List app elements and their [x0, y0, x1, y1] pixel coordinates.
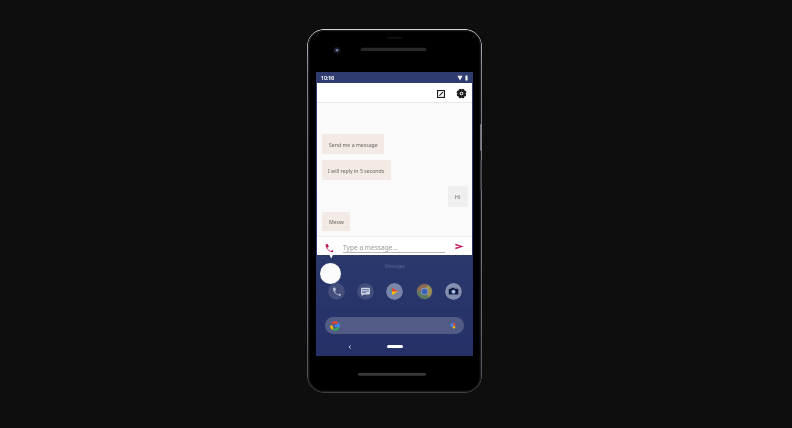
- button[interactable]: I will reply in 5 seconds: [322, 160, 391, 180]
- button[interactable]: Meow: [322, 212, 350, 231]
- button[interactable]: Send: [454, 241, 465, 252]
- button[interactable]: Send me a message: [322, 134, 384, 154]
- staticText: Meow: [329, 218, 344, 225]
- button[interactable]: Messages: [357, 283, 374, 300]
- button[interactable]: Camera: [445, 283, 462, 300]
- staticText: Messages: [375, 263, 415, 269]
- button[interactable]: Open in new window: [434, 87, 447, 100]
- staticText: Hi: [455, 193, 461, 200]
- staticText: Type a message...: [343, 243, 398, 252]
- staticText: I will reply in 5 seconds: [328, 167, 385, 174]
- button[interactable]: Search: [325, 317, 464, 334]
- button[interactable]: Play Store: [386, 283, 403, 300]
- button[interactable]: Chrome: [416, 283, 433, 300]
- button[interactable]: Back: [346, 343, 354, 351]
- button[interactable]: Phone: [328, 283, 345, 300]
- button[interactable]: Call: [323, 242, 334, 253]
- button[interactable]: Settings: [455, 87, 468, 100]
- button[interactable]: Home: [387, 345, 403, 348]
- staticText: 10:10: [321, 74, 335, 81]
- button[interactable]: Hi: [448, 186, 468, 207]
- staticText: Send me a message: [329, 141, 378, 148]
